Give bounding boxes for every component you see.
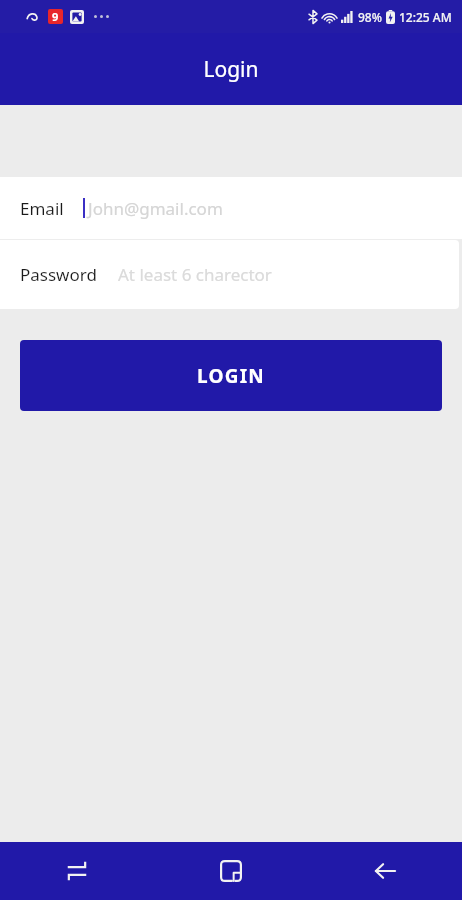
button[interactable]: Back bbox=[308, 842, 462, 900]
button[interactable]: Password bbox=[0, 240, 459, 309]
staticText: At least 6 charector bbox=[118, 263, 272, 286]
button[interactable]: Recent apps bbox=[0, 842, 154, 900]
button[interactable]: Email bbox=[0, 177, 462, 239]
staticText: Login bbox=[203, 55, 259, 84]
button[interactable]: Home bbox=[154, 842, 308, 900]
button[interactable]: LOGIN bbox=[20, 340, 442, 411]
staticText: Email bbox=[20, 197, 64, 220]
staticText: 9 bbox=[52, 9, 59, 24]
staticText: John@gmail.com bbox=[88, 197, 223, 220]
staticText: 98% bbox=[358, 9, 382, 25]
staticText: 12:25 AM bbox=[399, 9, 452, 25]
staticText: LOGIN bbox=[197, 363, 265, 389]
staticText: Password bbox=[20, 263, 97, 286]
